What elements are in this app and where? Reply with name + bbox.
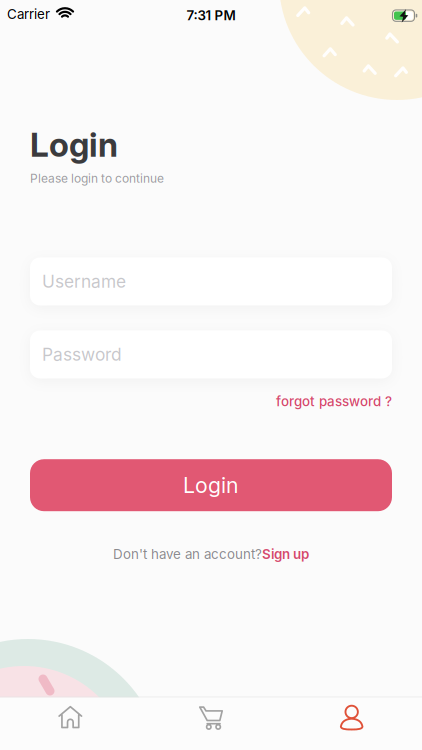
button[interactable]: Sign up	[262, 546, 309, 562]
button[interactable]: Profile	[281, 697, 422, 750]
staticText: 7:31 PM	[186, 8, 235, 23]
staticText: Login	[30, 125, 118, 164]
staticText: Sign up	[262, 546, 309, 562]
staticText: Login	[183, 473, 239, 498]
button[interactable]: Login	[30, 459, 392, 511]
button[interactable]: Password	[30, 330, 392, 378]
staticText: Please login to continue	[30, 171, 164, 185]
staticText: Username	[42, 271, 126, 292]
staticText: Don't have an account?	[113, 546, 262, 562]
staticText: Carrier	[7, 6, 50, 22]
button[interactable]: Home	[0, 697, 141, 750]
button[interactable]: Cart	[141, 697, 281, 750]
button[interactable]: forgot password ?	[276, 393, 392, 409]
button[interactable]: Username	[30, 257, 392, 305]
staticText: forgot password ?	[276, 393, 392, 409]
staticText: Password	[42, 344, 122, 365]
